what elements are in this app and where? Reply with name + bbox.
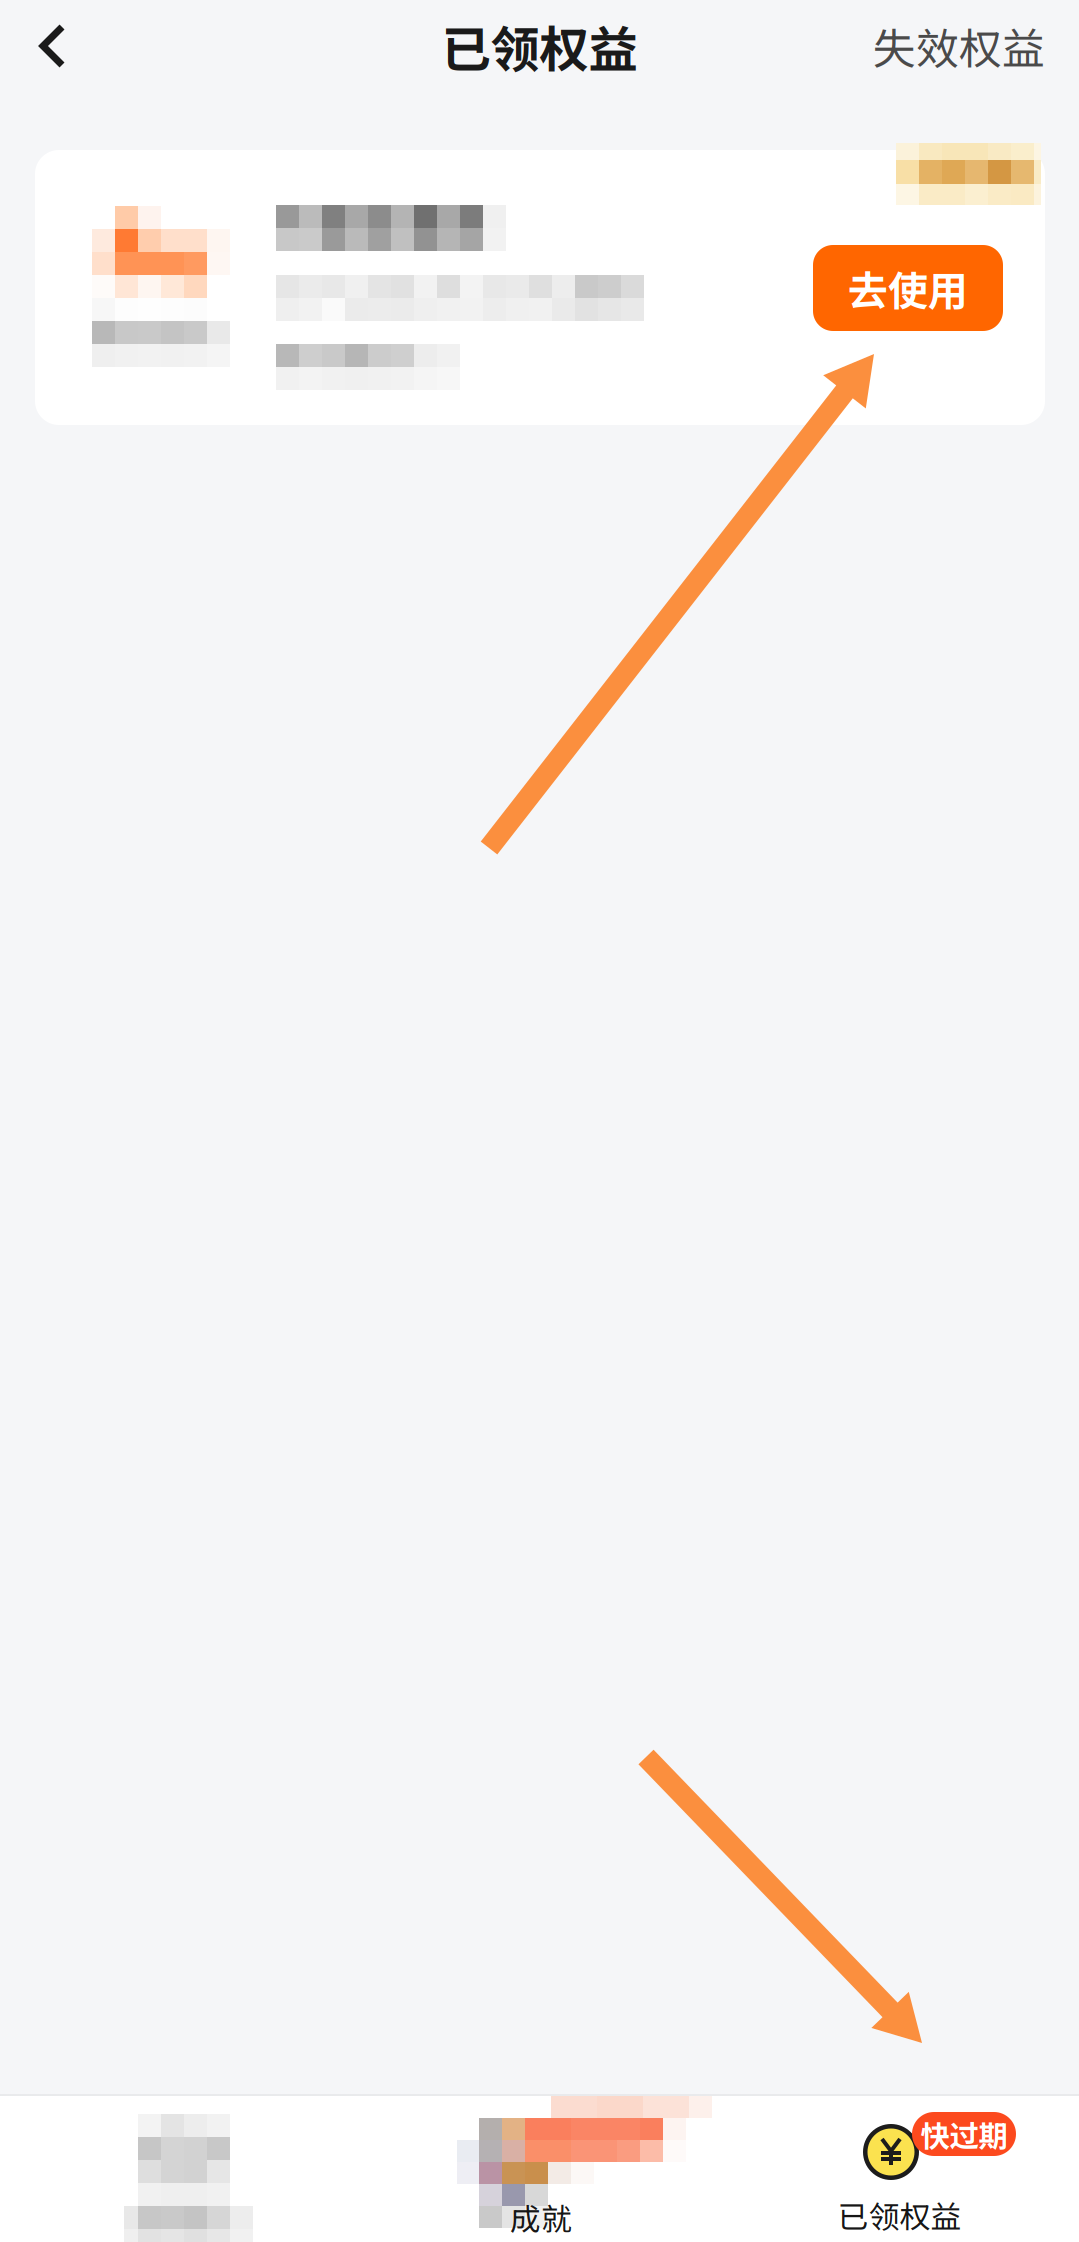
staticText: 已领权益 [441,10,637,82]
button[interactable]: 返回 [0,0,104,92]
button[interactable]: 去使用 [813,245,1003,331]
staticText: 快过期 [920,2113,1007,2155]
button[interactable]: 成就 [360,2096,720,2242]
staticText: 成就 [510,2195,572,2239]
button[interactable]: 失效权益 [873,0,1079,92]
staticText: 失效权益 [873,15,1045,77]
button[interactable]: 去使用 [35,150,1045,425]
staticText: 去使用 [848,259,968,317]
button[interactable]: 首页 [0,2096,360,2242]
button[interactable]: 快过期 [720,2096,1079,2242]
staticText: 已领权益 [837,2193,961,2237]
